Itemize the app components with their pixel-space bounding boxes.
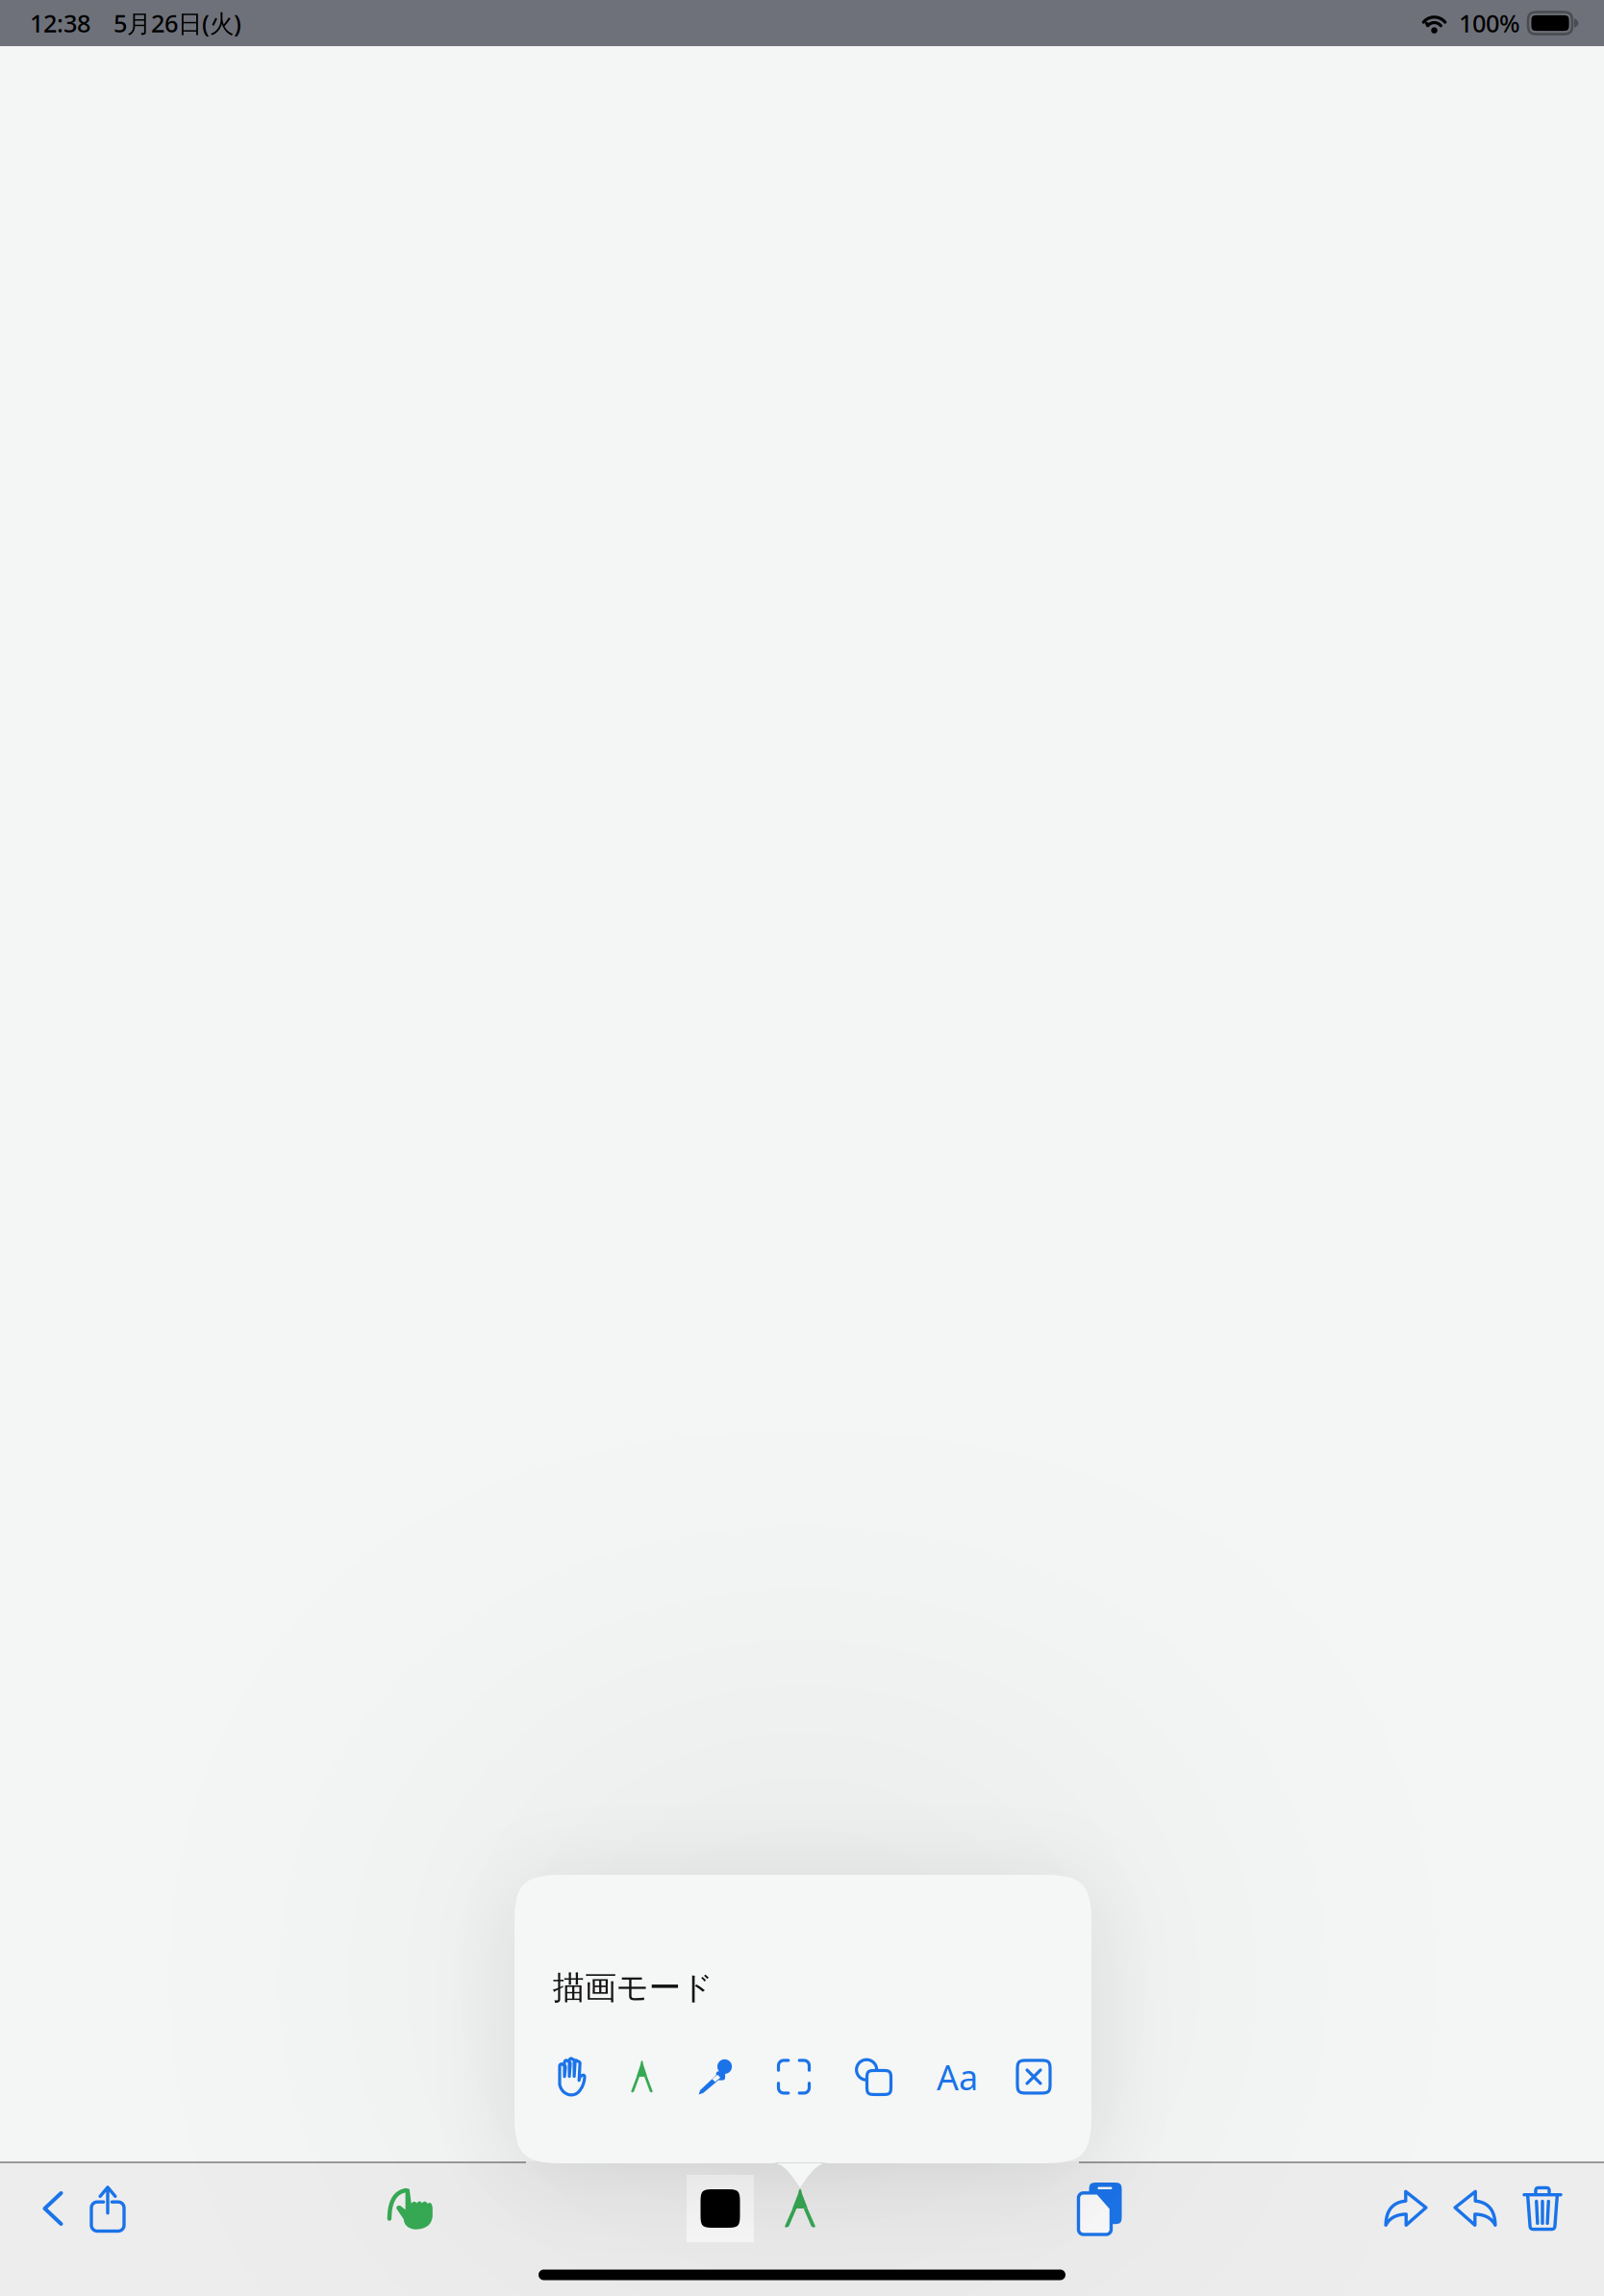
button[interactable]: Close (995, 2048, 1073, 2106)
button[interactable]: Shapes (840, 2048, 918, 2106)
staticText: 描画モード (553, 1968, 713, 2007)
button[interactable]: Text (918, 2048, 995, 2106)
button[interactable]: Undo (1443, 2175, 1507, 2242)
button[interactable]: Stroke colour (687, 2175, 754, 2242)
button[interactable]: Select (763, 2048, 840, 2106)
staticText: 100% (1459, 7, 1520, 39)
button[interactable]: Eyedropper (685, 2048, 763, 2106)
button[interactable]: Share (76, 2175, 139, 2242)
button[interactable]: Redo (1374, 2175, 1438, 2242)
button[interactable]: Gesture mode (379, 2175, 442, 2242)
button[interactable]: Back (21, 2175, 85, 2242)
staticText: 5月26日(火) (113, 7, 241, 39)
button[interactable]: Compass tool (768, 2175, 832, 2242)
button[interactable]: Compass (608, 2048, 685, 2106)
staticText: 12:38 (30, 7, 90, 39)
staticText: Aa (937, 2054, 978, 2100)
button[interactable]: Pages (1068, 2175, 1132, 2242)
button[interactable]: Delete (1511, 2175, 1574, 2242)
button[interactable]: Pan (531, 2048, 608, 2106)
